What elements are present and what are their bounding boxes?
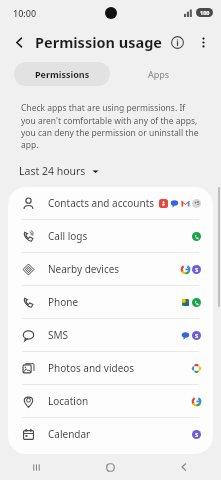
- staticText: Permissions: [35, 68, 90, 80]
- staticText: Nearby devices: [48, 262, 181, 276]
- button[interactable]: Recents: [0, 454, 73, 480]
- staticText: Calendar: [48, 427, 192, 441]
- button[interactable]: Back: [147, 454, 221, 480]
- button[interactable]: More options: [190, 29, 216, 55]
- staticText: S: [195, 266, 199, 274]
- staticText: Apps: [148, 68, 170, 80]
- button[interactable]: Calendar: [8, 418, 213, 450]
- button[interactable]: Apps: [110, 62, 207, 86]
- button[interactable]: Call logs: [8, 220, 213, 252]
- button[interactable]: SMS: [8, 319, 213, 351]
- staticText: Photos and videos: [48, 361, 192, 375]
- staticText: Contacts and accounts: [48, 196, 159, 210]
- staticText: Last 24 hours: [19, 164, 86, 178]
- staticText: Permission usage: [35, 32, 162, 52]
- button[interactable]: Photos and videos: [8, 352, 213, 384]
- button[interactable]: Location: [8, 385, 213, 417]
- staticText: S: [195, 332, 199, 340]
- staticText: 10:00: [13, 7, 37, 19]
- staticText: +5: [194, 200, 200, 207]
- staticText: Location: [48, 394, 192, 408]
- button[interactable]: Home: [73, 454, 147, 480]
- staticText: Call logs: [48, 229, 192, 243]
- button[interactable]: Back: [7, 30, 31, 54]
- button[interactable]: Nearby devices: [8, 253, 213, 285]
- staticText: SMS: [48, 328, 181, 342]
- staticText: Check apps that are using permissions. I…: [21, 102, 199, 150]
- button[interactable]: Permissions: [14, 62, 110, 86]
- staticText: S: [195, 431, 199, 439]
- button[interactable]: Last 24 hours: [17, 162, 101, 180]
- button[interactable]: Contacts and accounts: [8, 187, 213, 219]
- button[interactable]: Phone: [8, 286, 213, 318]
- staticText: 100: [200, 9, 210, 16]
- staticText: Phone: [48, 295, 181, 309]
- button[interactable]: Information: [164, 29, 190, 55]
